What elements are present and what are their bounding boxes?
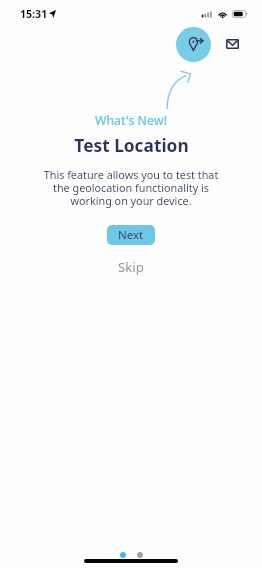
button[interactable]: Next xyxy=(107,225,155,245)
button[interactable]: Test location xyxy=(176,27,211,62)
staticText: Next xyxy=(118,227,144,243)
staticText: This feature allows you to test that the… xyxy=(40,167,222,208)
button[interactable]: Skip xyxy=(104,251,158,283)
staticText: Test Location xyxy=(74,134,189,158)
staticText: What's New! xyxy=(95,112,167,129)
staticText: 15:31 xyxy=(20,7,48,21)
button[interactable]: Messages xyxy=(219,32,246,56)
staticText: Skip xyxy=(118,258,144,276)
